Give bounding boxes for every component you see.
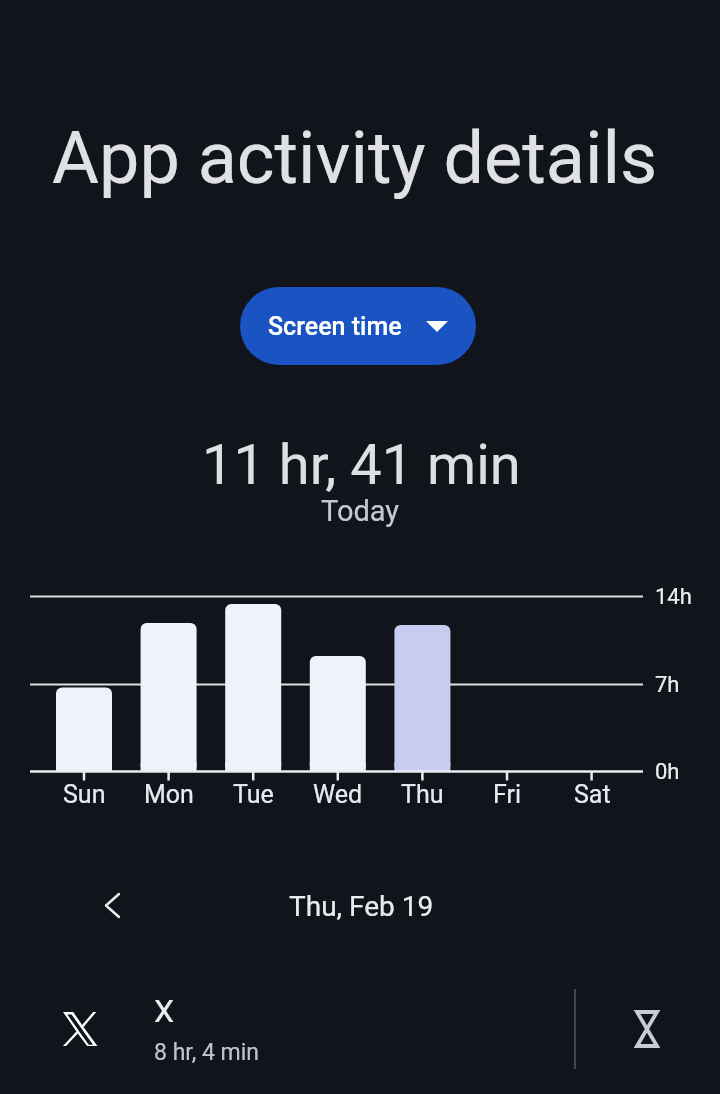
staticText: Thu, Feb 19 xyxy=(289,890,434,923)
staticText: X xyxy=(154,992,175,1030)
staticText: 14h xyxy=(655,584,692,610)
button[interactable] xyxy=(612,994,682,1064)
staticText: 7h xyxy=(655,672,680,698)
staticText: Today xyxy=(321,494,400,528)
staticText: 8 hr, 4 min xyxy=(154,1039,260,1066)
button[interactable]: Screen time xyxy=(240,287,476,365)
staticText: Tue xyxy=(233,780,274,809)
staticText: Thu xyxy=(401,780,444,809)
staticText: 11 hr, 41 min xyxy=(202,432,521,498)
staticText: 0h xyxy=(655,759,680,785)
staticText: Sat xyxy=(574,780,611,809)
staticText: Mon xyxy=(144,780,194,809)
staticText: Sun xyxy=(63,780,106,809)
staticText: Wed xyxy=(313,780,363,809)
button[interactable] xyxy=(87,880,137,930)
staticText: App activity details xyxy=(52,116,658,200)
staticText: Screen time xyxy=(268,312,402,341)
button[interactable]: X xyxy=(0,984,720,1074)
staticText: Fri xyxy=(493,780,522,809)
